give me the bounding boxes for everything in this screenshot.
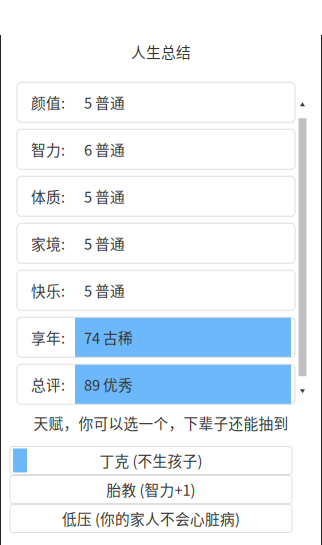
staticText: 低压 (你的家人不会心脏病) [62,508,240,529]
staticText: 总评: [31,374,65,395]
staticText: 快乐: [31,280,65,301]
button[interactable]: Scroll down [297,389,308,399]
staticText: 胎教 (智力+1) [106,479,195,500]
button[interactable]: 胎教 (智力+1) [10,475,292,503]
staticText: 享年: [31,327,65,348]
staticText: 丁克 (不生孩子) [99,450,202,471]
staticText: 5 普通 [84,233,125,254]
staticText: 6 普通 [84,139,125,160]
staticText: 5 普通 [84,186,125,207]
staticText: 颜值: [31,92,65,113]
staticText: 家境: [31,233,65,254]
staticText: 智力: [31,139,65,160]
staticText: 天赋，你可以选一个，下辈子还能抽到 [33,412,288,433]
staticText: 89 优秀 [84,374,133,395]
button[interactable]: 颜值: [17,82,295,122]
button[interactable]: 总评: [17,364,295,404]
button[interactable]: 智力: [17,129,295,169]
staticText: 体质: [31,186,65,207]
staticText: 74 古稀 [84,327,133,348]
button[interactable]: Scroll up [297,89,308,106]
staticText: 人生总结 [131,41,191,62]
button[interactable]: 享年: [17,317,295,357]
button[interactable]: 体质: [17,176,295,216]
button[interactable]: 低压 (你的家人不会心脏病) [10,504,292,532]
button[interactable]: 快乐: [17,270,295,310]
button[interactable]: 丁克 (不生孩子) [10,446,292,474]
button[interactable]: 家境: [17,223,295,263]
staticText: 5 普通 [84,280,125,301]
staticText: 5 普通 [84,92,125,113]
